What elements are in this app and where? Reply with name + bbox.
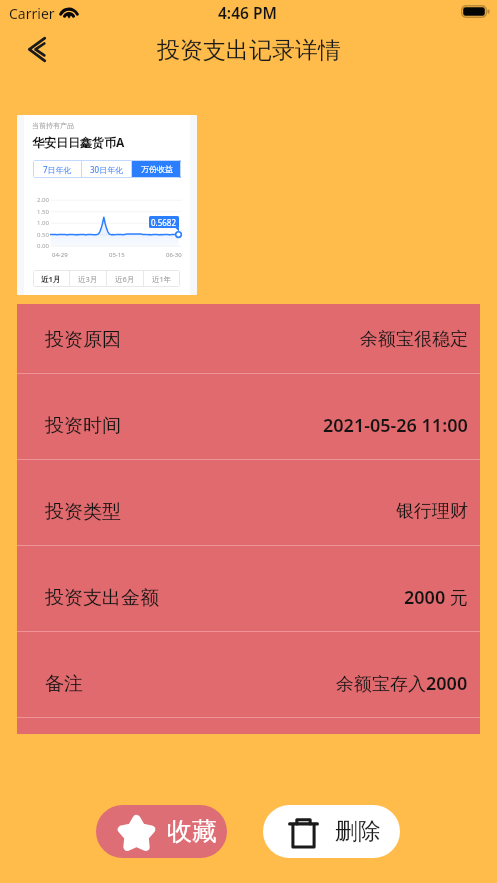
staticText: 近1年 bbox=[152, 274, 172, 284]
button[interactable]: 万份收益 bbox=[132, 160, 181, 178]
staticText: 收藏 bbox=[167, 816, 217, 847]
staticText: 06-30 bbox=[166, 251, 182, 259]
button[interactable]: 当前持有产品 bbox=[17, 115, 197, 295]
button[interactable]: 投资原因 bbox=[17, 304, 480, 373]
staticText: 万份收益 bbox=[141, 164, 173, 174]
button[interactable]: 投资支出金额 bbox=[17, 546, 480, 631]
staticText: 2.00 bbox=[37, 196, 49, 204]
staticText: 30日年化 bbox=[90, 164, 124, 175]
staticText: 余额宝存入2000 bbox=[336, 671, 468, 696]
button[interactable]: 删除 bbox=[263, 805, 400, 858]
staticText: 2021-05-26 11:00 bbox=[323, 413, 468, 438]
staticText: 0.5682 bbox=[151, 217, 177, 228]
button[interactable]: 近1年 bbox=[144, 270, 180, 287]
staticText: 2000 元 bbox=[404, 585, 468, 610]
staticText: 投资时间 bbox=[45, 414, 121, 438]
button[interactable]: 近3月 bbox=[70, 270, 106, 287]
staticText: 05-15 bbox=[109, 251, 125, 259]
button[interactable]: 近1月 bbox=[33, 270, 69, 287]
staticText: 1.00 bbox=[37, 219, 49, 227]
button[interactable]: Back bbox=[14, 22, 58, 66]
staticText: 余额宝很稳定 bbox=[360, 328, 468, 351]
staticText: 备注 bbox=[45, 672, 83, 696]
button[interactable]: 30日年化 bbox=[82, 160, 131, 178]
staticText: 投资支出金额 bbox=[45, 586, 159, 610]
button[interactable]: 投资时间 bbox=[17, 374, 480, 459]
staticText: 华安日日鑫货币A bbox=[32, 134, 125, 150]
button[interactable]: 7日年化 bbox=[33, 160, 81, 178]
staticText: 0.50 bbox=[37, 231, 49, 239]
staticText: 投资支出记录详情 bbox=[157, 36, 341, 65]
staticText: 04-29 bbox=[52, 251, 68, 259]
staticText: 近6月 bbox=[115, 274, 135, 284]
staticText: 1.50 bbox=[37, 208, 49, 216]
staticText: 近3月 bbox=[78, 274, 98, 284]
button[interactable]: 收藏 bbox=[96, 805, 227, 858]
staticText: 当前持有产品 bbox=[32, 121, 74, 130]
staticText: 近1月 bbox=[41, 274, 61, 284]
staticText: 4:46 PM bbox=[218, 2, 277, 23]
staticText: 删除 bbox=[335, 817, 381, 846]
staticText: 7日年化 bbox=[43, 164, 72, 175]
button[interactable]: 近6月 bbox=[107, 270, 143, 287]
button[interactable]: 投资类型 bbox=[17, 460, 480, 545]
staticText: 投资原因 bbox=[45, 328, 121, 352]
staticText: 投资类型 bbox=[45, 500, 121, 524]
staticText: 0.00 bbox=[37, 242, 49, 250]
button[interactable]: 备注 bbox=[17, 632, 480, 717]
staticText: 银行理财 bbox=[396, 500, 468, 523]
staticText: Carrier bbox=[9, 4, 55, 23]
